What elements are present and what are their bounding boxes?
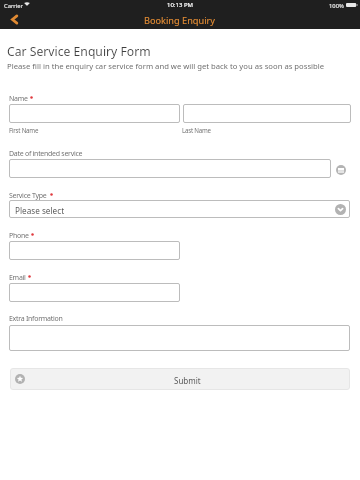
staticText: Car Service Enquiry Form [7, 43, 151, 60]
button[interactable]: Back [4, 10, 25, 29]
button[interactable] [183, 104, 351, 123]
button[interactable] [9, 159, 331, 178]
button[interactable] [9, 283, 180, 302]
staticText: Service Type [9, 191, 47, 201]
staticText: Email [9, 273, 26, 283]
staticText: Please fill in the enquiry car service f… [7, 61, 325, 71]
button[interactable]: Pick date [336, 165, 346, 175]
staticText: Name [9, 94, 28, 104]
staticText: Please select [15, 205, 65, 216]
staticText: Submit [174, 375, 201, 386]
staticText: Phone [9, 231, 29, 241]
staticText: Extra Information [9, 314, 63, 324]
staticText: Carrier [4, 2, 23, 10]
button[interactable] [9, 241, 180, 260]
button[interactable] [9, 325, 350, 351]
staticText: Last Name [182, 126, 211, 134]
button[interactable]: Please select [9, 200, 350, 218]
staticText: 10:13 PM [167, 1, 193, 9]
staticText: Booking Enquiry [144, 14, 216, 27]
button[interactable]: Submit [10, 368, 350, 390]
staticText: Date of intended service [9, 149, 83, 159]
button[interactable] [9, 104, 180, 123]
staticText: First Name [9, 126, 39, 134]
staticText: 100% [329, 2, 344, 10]
